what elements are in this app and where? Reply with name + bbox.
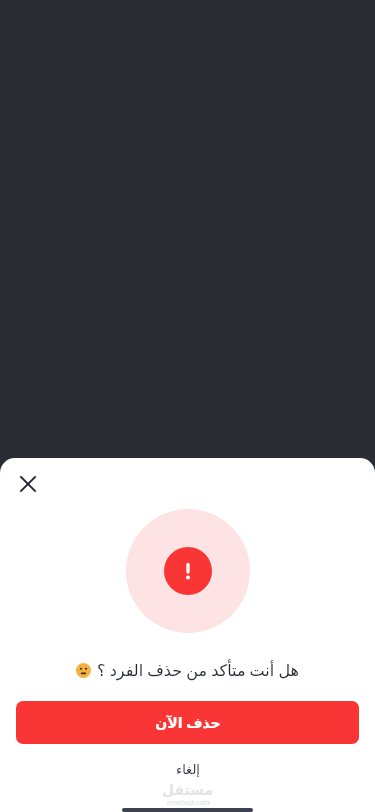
button[interactable]: Close [12, 468, 44, 500]
staticText: mostaql.com [167, 798, 210, 806]
button[interactable]: حذف الآن [16, 701, 359, 744]
staticText: هل أنت متأكد من حذف الفرد ؟ [97, 659, 299, 681]
staticText: مستقل [162, 782, 214, 798]
staticText: إلغاء [176, 762, 200, 777]
staticText: حذف الآن [155, 713, 221, 732]
button[interactable]: إلغاء [0, 756, 375, 782]
